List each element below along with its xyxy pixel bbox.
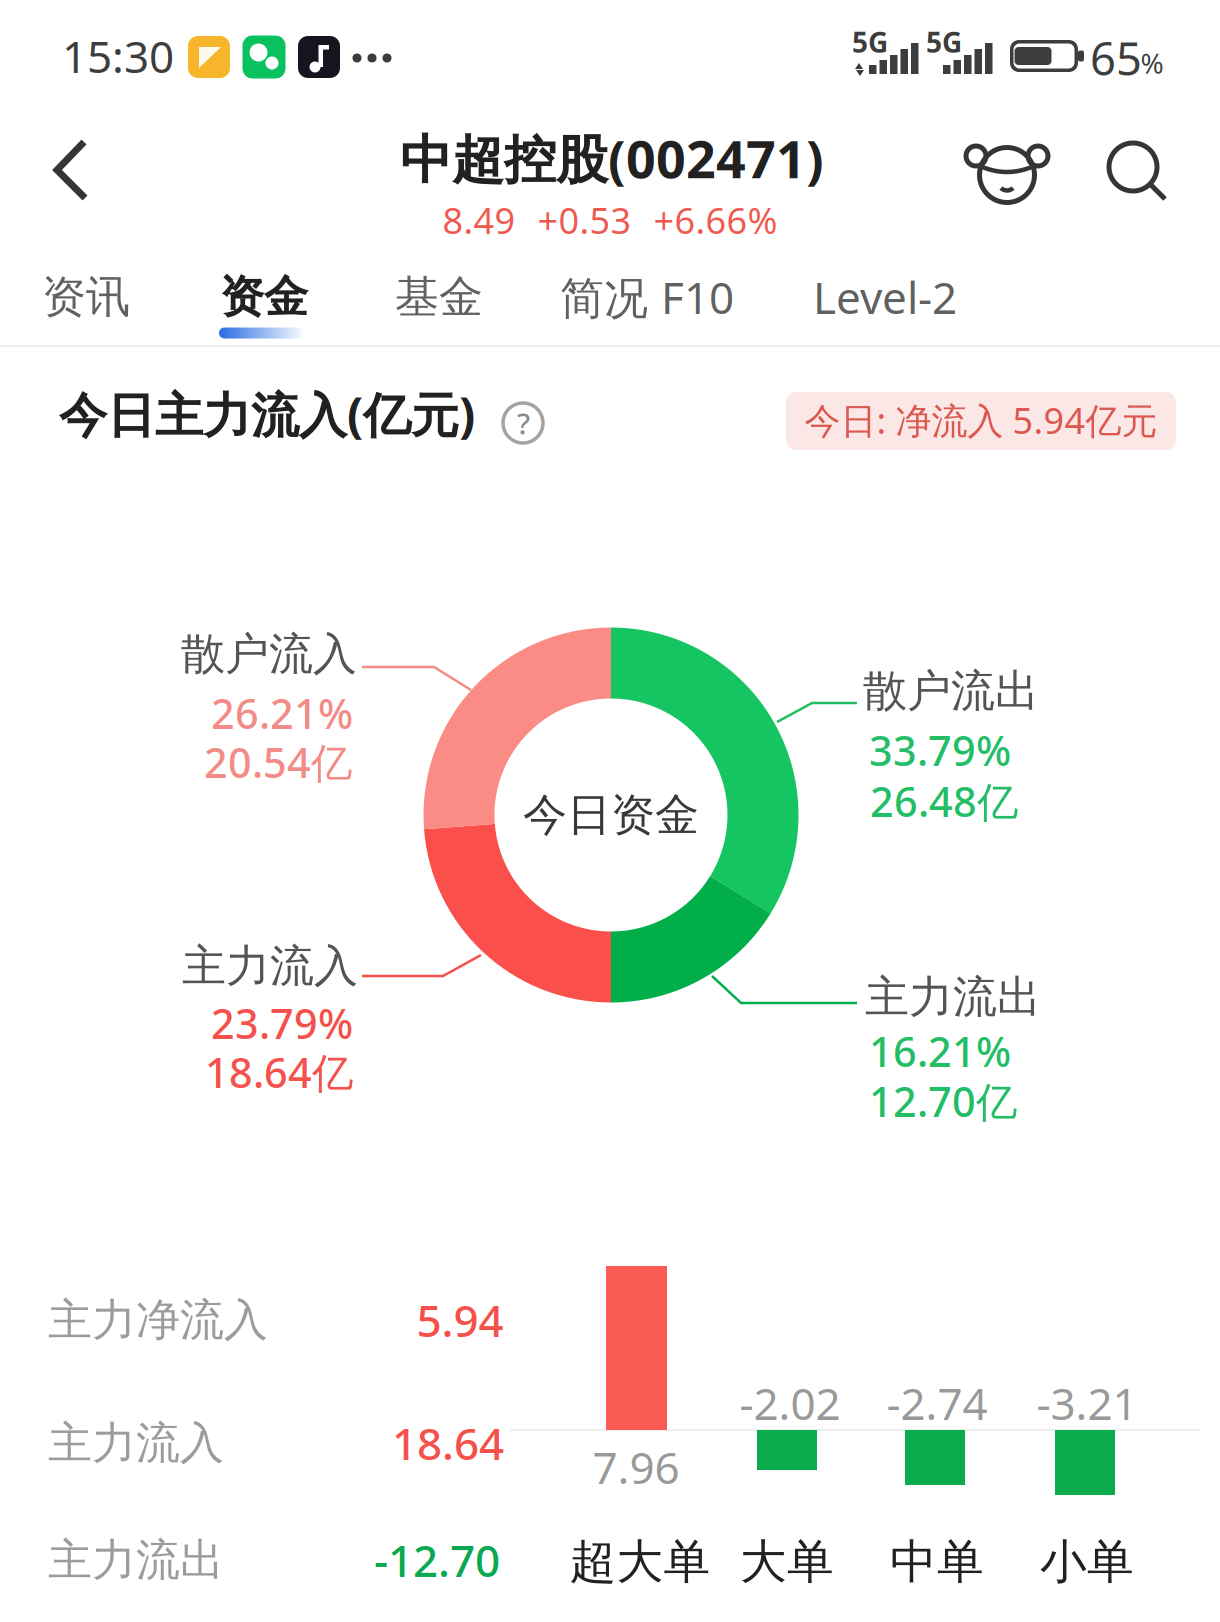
staticText: 主力流出	[865, 970, 1041, 1024]
staticText: -2.02	[739, 1374, 840, 1432]
staticText: 今日资金	[523, 788, 699, 842]
staticText: 基金	[395, 270, 483, 324]
staticText: 12.70亿	[869, 1074, 1017, 1128]
button[interactable]: Customer service	[968, 140, 1046, 204]
staticText: 超大单	[569, 1533, 710, 1591]
staticText: +0.53	[537, 196, 631, 244]
staticText: 33.79%	[869, 723, 1011, 777]
button[interactable]: 资讯	[42, 270, 130, 324]
staticText: 小单	[1040, 1533, 1134, 1591]
staticText: 26.21%	[211, 686, 353, 740]
staticText: 26.48亿	[870, 774, 1018, 828]
staticText: Level-2	[813, 268, 957, 326]
staticText: -2.74	[886, 1374, 987, 1432]
staticText: ?	[517, 403, 530, 442]
staticText: 5.94	[416, 1291, 503, 1349]
staticText: 主力净流入	[48, 1293, 268, 1347]
button[interactable]: 基金	[395, 270, 483, 324]
staticText: -12.70	[374, 1531, 500, 1589]
staticText: 今日主力流入(亿元)	[59, 382, 475, 446]
staticText: -3.21	[1036, 1374, 1137, 1432]
staticText: 23.79%	[211, 996, 353, 1050]
staticText: 16.21%	[869, 1024, 1011, 1078]
staticText: 今日: 净流入 5.94亿元	[804, 396, 1157, 444]
staticText: 8.49	[442, 196, 515, 244]
button[interactable]: 简况 F10	[560, 268, 734, 326]
staticText: 简况 F10	[560, 268, 734, 326]
staticText: 18.64亿	[205, 1045, 353, 1099]
button[interactable]: 资金	[219, 273, 309, 345]
button[interactable]: Help	[499, 399, 547, 447]
staticText: 主力流入	[48, 1416, 224, 1470]
staticText: +6.66%	[653, 196, 777, 244]
staticText: 18.64	[392, 1414, 504, 1472]
staticText: 7.96	[592, 1438, 679, 1496]
staticText: 5G	[926, 23, 962, 61]
button[interactable]: Back	[54, 139, 88, 201]
staticText: 散户流出	[863, 664, 1039, 718]
staticText: 散户流入	[181, 627, 357, 681]
staticText: 主力流出	[48, 1533, 224, 1587]
staticText: 65	[1090, 28, 1142, 88]
button[interactable]: Level-2	[813, 268, 957, 326]
button[interactable]: Search	[1106, 141, 1170, 203]
staticText: %	[1140, 44, 1163, 82]
staticText: 5G	[852, 23, 888, 61]
staticText: 中超控股(002471)	[400, 123, 824, 193]
staticText: 大单	[740, 1533, 834, 1591]
staticText: 主力流入	[182, 939, 358, 993]
staticText: 资讯	[42, 270, 130, 324]
staticText: 中单	[890, 1533, 984, 1591]
staticText: 20.54亿	[204, 735, 352, 789]
staticText: 15:30	[62, 27, 174, 85]
staticText: 资金	[220, 270, 308, 324]
